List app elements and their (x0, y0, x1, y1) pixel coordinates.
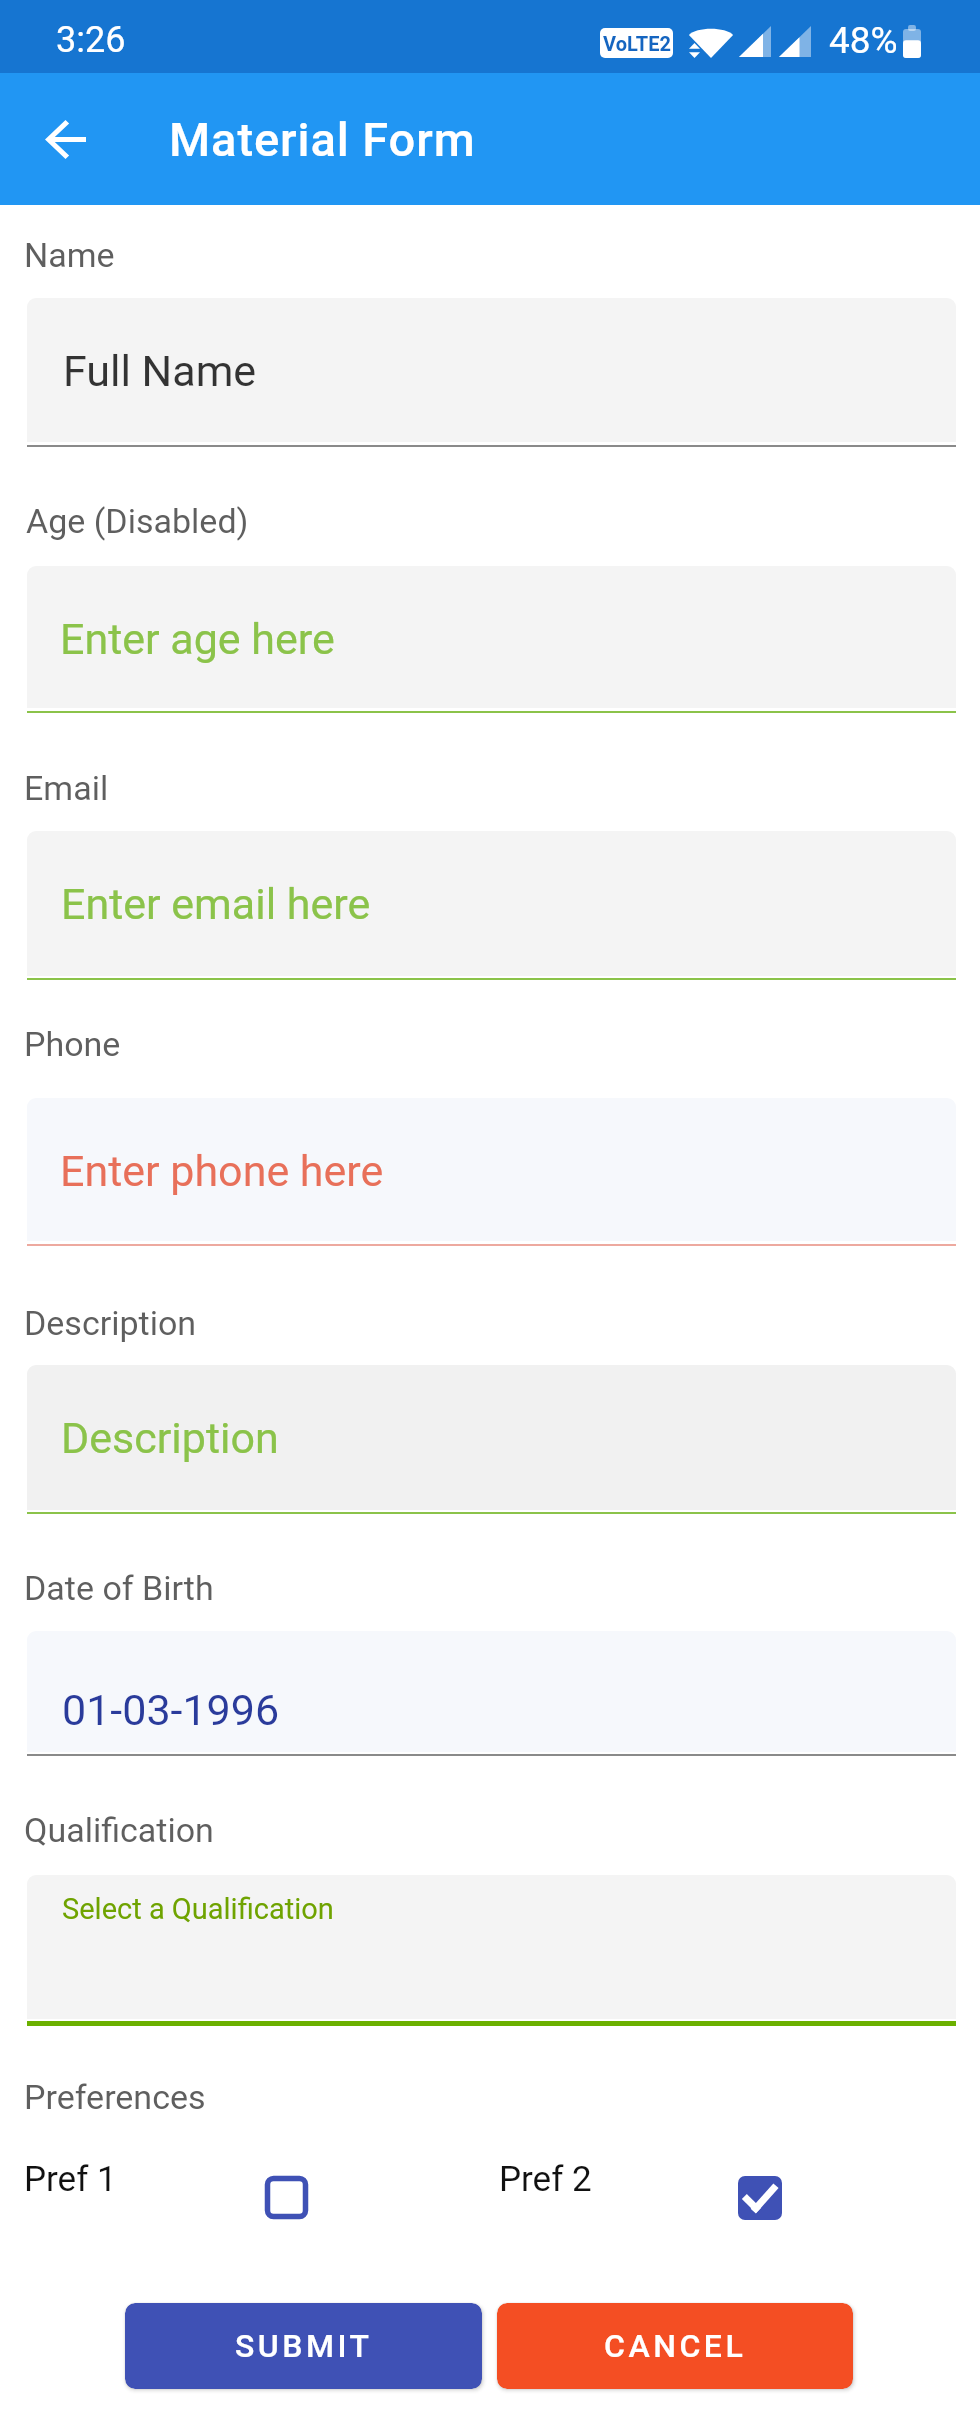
staticText: Enter age here (60, 614, 335, 664)
staticText: Age (Disabled) (26, 501, 249, 541)
button[interactable] (27, 1098, 956, 1241)
staticText: Enter email here (61, 879, 371, 929)
staticText: Name (24, 235, 115, 275)
staticText: Enter phone here (60, 1146, 384, 1196)
staticText: 48% (829, 19, 898, 62)
button[interactable] (27, 566, 956, 708)
staticText: Select a Qualification (62, 1892, 334, 1926)
staticText: 3:26 (56, 19, 126, 61)
button[interactable] (27, 1631, 956, 1752)
button[interactable] (27, 298, 956, 442)
button[interactable] (27, 831, 956, 976)
button[interactable]: Back (25, 102, 99, 176)
button[interactable]: Pref 1 (20, 2160, 320, 2226)
staticText: Description (61, 1413, 279, 1463)
button[interactable]: CANCEL (497, 2303, 853, 2389)
staticText: Preferences (24, 2077, 206, 2117)
staticText: Pref 2 (499, 2159, 592, 2200)
staticText: 01-03-1996 (62, 1685, 280, 1735)
staticText: VoLTE2 (603, 32, 671, 55)
button[interactable]: SUBMIT (125, 2303, 482, 2389)
staticText: Full Name (63, 346, 257, 396)
staticText: Email (24, 768, 109, 808)
staticText: SUBMIT (235, 2327, 373, 2365)
button[interactable] (27, 1365, 956, 1510)
button[interactable]: Pref 2 (495, 2160, 795, 2226)
staticText: Description (24, 1303, 197, 1343)
button[interactable] (27, 1875, 956, 2019)
staticText: Date of Birth (24, 1568, 214, 1608)
staticText: Phone (24, 1024, 121, 1064)
staticText: Pref 1 (24, 2159, 117, 2200)
staticText: Material Form (169, 112, 476, 167)
staticText: Qualification (24, 1810, 214, 1850)
staticText: CANCEL (604, 2327, 747, 2365)
